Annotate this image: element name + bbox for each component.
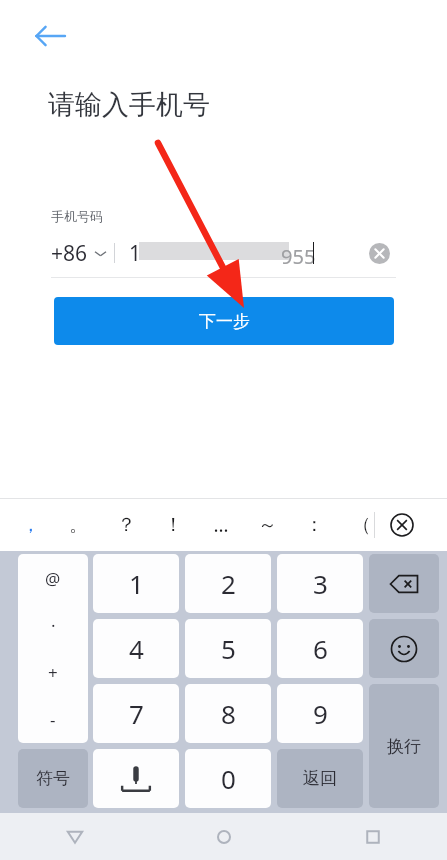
- button[interactable]: +86: [51, 239, 114, 268]
- button[interactable]: ：: [291, 498, 338, 551]
- staticText: 0: [221, 761, 236, 796]
- button[interactable]: 7: [93, 684, 179, 743]
- button[interactable]: 换行: [369, 684, 439, 808]
- staticText: 符号: [36, 768, 70, 789]
- staticText: （: [352, 513, 371, 537]
- staticText: 5: [221, 631, 236, 666]
- staticText: ·: [51, 614, 56, 637]
- button[interactable]: 符号: [18, 749, 88, 808]
- button[interactable]: 2: [185, 554, 271, 613]
- button[interactable]: 8: [185, 684, 271, 743]
- staticText: 。: [69, 513, 88, 537]
- staticText: 4: [129, 631, 144, 666]
- staticText: @: [45, 567, 61, 590]
- button[interactable]: Voice input and space: [93, 749, 179, 808]
- staticText: ，: [21, 513, 40, 537]
- button[interactable]: （: [338, 498, 385, 551]
- button[interactable]: ！: [150, 498, 197, 551]
- staticText: 955: [281, 243, 316, 270]
- button[interactable]: 下一步: [54, 297, 394, 345]
- staticText: +86: [51, 239, 88, 268]
- button[interactable]: 5: [185, 619, 271, 678]
- staticText: 9: [313, 696, 328, 731]
- staticText: 8: [221, 696, 236, 731]
- button[interactable]: Emoji: [369, 619, 439, 678]
- button[interactable]: 。: [54, 498, 102, 551]
- button[interactable]: Home: [149, 813, 298, 860]
- button[interactable]: Back: [0, 813, 149, 860]
- staticText: 换行: [387, 736, 421, 757]
- staticText: ？: [117, 513, 136, 537]
- button[interactable]: ～: [244, 498, 291, 551]
- staticText: 2: [221, 566, 236, 601]
- staticText: ～: [258, 513, 277, 537]
- button[interactable]: 4: [93, 619, 179, 678]
- staticText: 1: [129, 566, 144, 601]
- button[interactable]: keypad symbols: [18, 554, 88, 743]
- button[interactable]: Clear text: [362, 236, 396, 270]
- staticText: 1: [129, 239, 142, 268]
- button[interactable]: 9: [277, 684, 363, 743]
- button[interactable]: ？: [102, 498, 150, 551]
- staticText: 手机号码: [51, 208, 103, 224]
- staticText: -: [50, 708, 56, 731]
- staticText: ！: [164, 513, 183, 537]
- button[interactable]: Recent apps: [298, 813, 447, 860]
- button[interactable]: Back: [24, 10, 76, 62]
- button[interactable]: 3: [277, 554, 363, 613]
- button[interactable]: ，: [6, 498, 54, 551]
- staticText: 请输入手机号: [48, 88, 210, 122]
- staticText: 7: [129, 696, 144, 731]
- button[interactable]: Hide keyboard: [386, 509, 418, 541]
- button[interactable]: …: [197, 498, 244, 551]
- staticText: ：: [305, 513, 324, 537]
- staticText: +: [48, 661, 58, 684]
- staticText: …: [213, 512, 229, 538]
- button[interactable]: 返回: [277, 749, 363, 808]
- staticText: 返回: [303, 768, 337, 789]
- button[interactable]: 0: [185, 749, 271, 808]
- button[interactable]: 6: [277, 619, 363, 678]
- staticText: 6: [313, 631, 328, 666]
- button[interactable]: 1: [93, 554, 179, 613]
- staticText: 3: [313, 566, 328, 601]
- staticText: 下一步: [199, 311, 250, 332]
- button[interactable]: Backspace: [369, 554, 439, 613]
